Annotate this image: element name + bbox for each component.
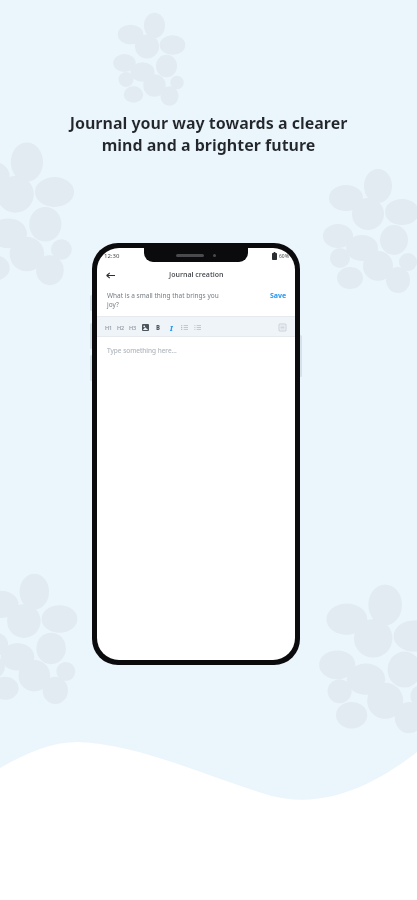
staticText: Type something here... <box>107 346 177 355</box>
button[interactable]: H2 <box>115 319 127 335</box>
button[interactable]: Insert image <box>139 319 152 335</box>
button[interactable]: H1 <box>103 319 115 335</box>
staticText: Journal creation <box>169 270 224 280</box>
button[interactable]: Numbered list <box>191 319 204 335</box>
staticText: H1 <box>105 324 113 331</box>
staticText: 60% <box>279 253 289 260</box>
staticText: Journal your way towards a clearer mind … <box>34 112 383 156</box>
staticText: 12:30 <box>104 252 120 260</box>
button[interactable]: Back <box>102 267 118 283</box>
button[interactable]: Save <box>266 291 287 301</box>
button[interactable]: Bulleted list <box>178 319 191 335</box>
button[interactable]: H3 <box>127 319 139 335</box>
staticText: Save <box>270 291 287 301</box>
staticText: H2 <box>117 324 125 331</box>
staticText: I <box>170 324 173 331</box>
button[interactable]: More options <box>276 319 289 335</box>
staticText: H3 <box>129 324 137 331</box>
button[interactable]: Italic <box>165 319 178 335</box>
button[interactable]: Bold <box>152 319 165 335</box>
staticText: B <box>156 324 161 331</box>
staticText: What is a small thing that brings you jo… <box>107 291 266 309</box>
